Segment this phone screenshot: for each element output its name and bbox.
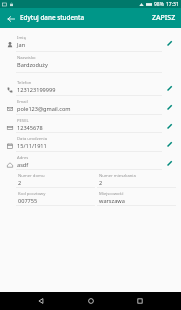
button[interactable]: Back	[4, 12, 17, 25]
staticText: PESEL	[17, 118, 29, 124]
staticText: Numer mieszkania	[99, 173, 136, 179]
staticText: 12345678	[17, 124, 43, 132]
staticText: Bardzoduży	[17, 61, 48, 69]
staticText: Data urodzenia	[17, 136, 48, 142]
staticText: 2	[99, 179, 103, 187]
button[interactable]: Edit Data urodzenia	[165, 140, 174, 149]
staticText: Nazwisko	[17, 55, 36, 61]
button[interactable]: Adres	[0, 152, 181, 170]
staticText: 2	[18, 179, 22, 187]
staticText: Email	[17, 99, 28, 105]
staticText: Adres	[17, 155, 29, 161]
button[interactable]: Home	[83, 293, 99, 309]
button[interactable]: Edit Adres	[165, 159, 174, 168]
button[interactable]: Edit Imię	[165, 39, 174, 48]
button[interactable]: Data urodzenia	[0, 133, 181, 152]
button[interactable]: Nazwisko	[0, 52, 181, 73]
staticText: pole123@gmail.com	[17, 105, 71, 113]
button[interactable]: Edit Email	[165, 103, 174, 112]
button[interactable]: Telefon	[0, 73, 181, 96]
staticText: 15/11/1911	[17, 142, 47, 150]
staticText: Miejscowość	[99, 191, 124, 197]
staticText: Telefon	[17, 80, 32, 86]
button[interactable]: ZAPISZ	[147, 8, 181, 28]
staticText: Jan	[17, 41, 26, 49]
staticText: asdf	[17, 161, 29, 169]
button[interactable]: Back	[33, 293, 49, 309]
staticText: Imię	[17, 35, 26, 41]
button[interactable]: Email	[0, 96, 181, 115]
staticText: warszawa	[99, 197, 125, 205]
button[interactable]: PESEL	[0, 115, 181, 133]
staticText: Kod pocztowy	[18, 191, 46, 197]
button[interactable]: Numer mieszkania	[97, 170, 176, 188]
staticText: 17:31	[166, 1, 179, 8]
staticText: ZAPISZ	[152, 13, 176, 23]
button[interactable]: Kod pocztowy	[16, 188, 95, 206]
staticText: 007755	[18, 197, 38, 205]
staticText: Numer domu	[18, 173, 45, 179]
button[interactable]: Edit PESEL	[165, 122, 174, 131]
staticText: 98%	[154, 1, 164, 8]
button[interactable]: Recents	[132, 293, 148, 309]
staticText: 123123199999	[17, 86, 56, 94]
button[interactable]: Edit Telefon	[165, 84, 174, 93]
button[interactable]: Imię	[0, 32, 181, 52]
staticText: Edytuj dane studenta	[20, 13, 85, 22]
button[interactable]: Numer domu	[16, 170, 95, 188]
button[interactable]: Miejscowość	[97, 188, 176, 206]
